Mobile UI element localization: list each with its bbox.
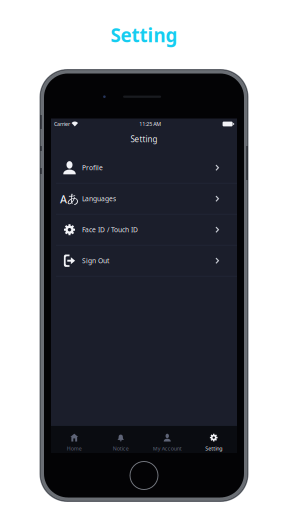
staticText: Home (67, 445, 82, 452)
staticText: Profile (82, 163, 103, 172)
button[interactable]: Notice (97, 426, 144, 453)
button[interactable]: Face ID / Touch ID (51, 214, 237, 245)
button[interactable]: My Account (144, 426, 190, 453)
staticText: A (60, 192, 67, 206)
button[interactable]: Setting (190, 426, 237, 453)
button[interactable]: Home (51, 426, 97, 453)
staticText: Carrier (54, 120, 70, 128)
staticText: あ (67, 191, 79, 206)
staticText: Setting (110, 23, 177, 47)
staticText: Setting (130, 134, 157, 144)
staticText: 11:25 AM (139, 120, 161, 128)
staticText: My Account (153, 445, 182, 452)
button[interactable]: Profile (51, 152, 237, 183)
staticText: Face ID / Touch ID (82, 225, 138, 234)
staticText: Notice (113, 445, 129, 452)
button[interactable]: A (51, 183, 237, 214)
staticText: Languages (82, 194, 116, 203)
staticText: Sign Out (82, 256, 109, 265)
staticText: Setting (205, 445, 222, 452)
button[interactable]: Sign Out (51, 245, 237, 276)
